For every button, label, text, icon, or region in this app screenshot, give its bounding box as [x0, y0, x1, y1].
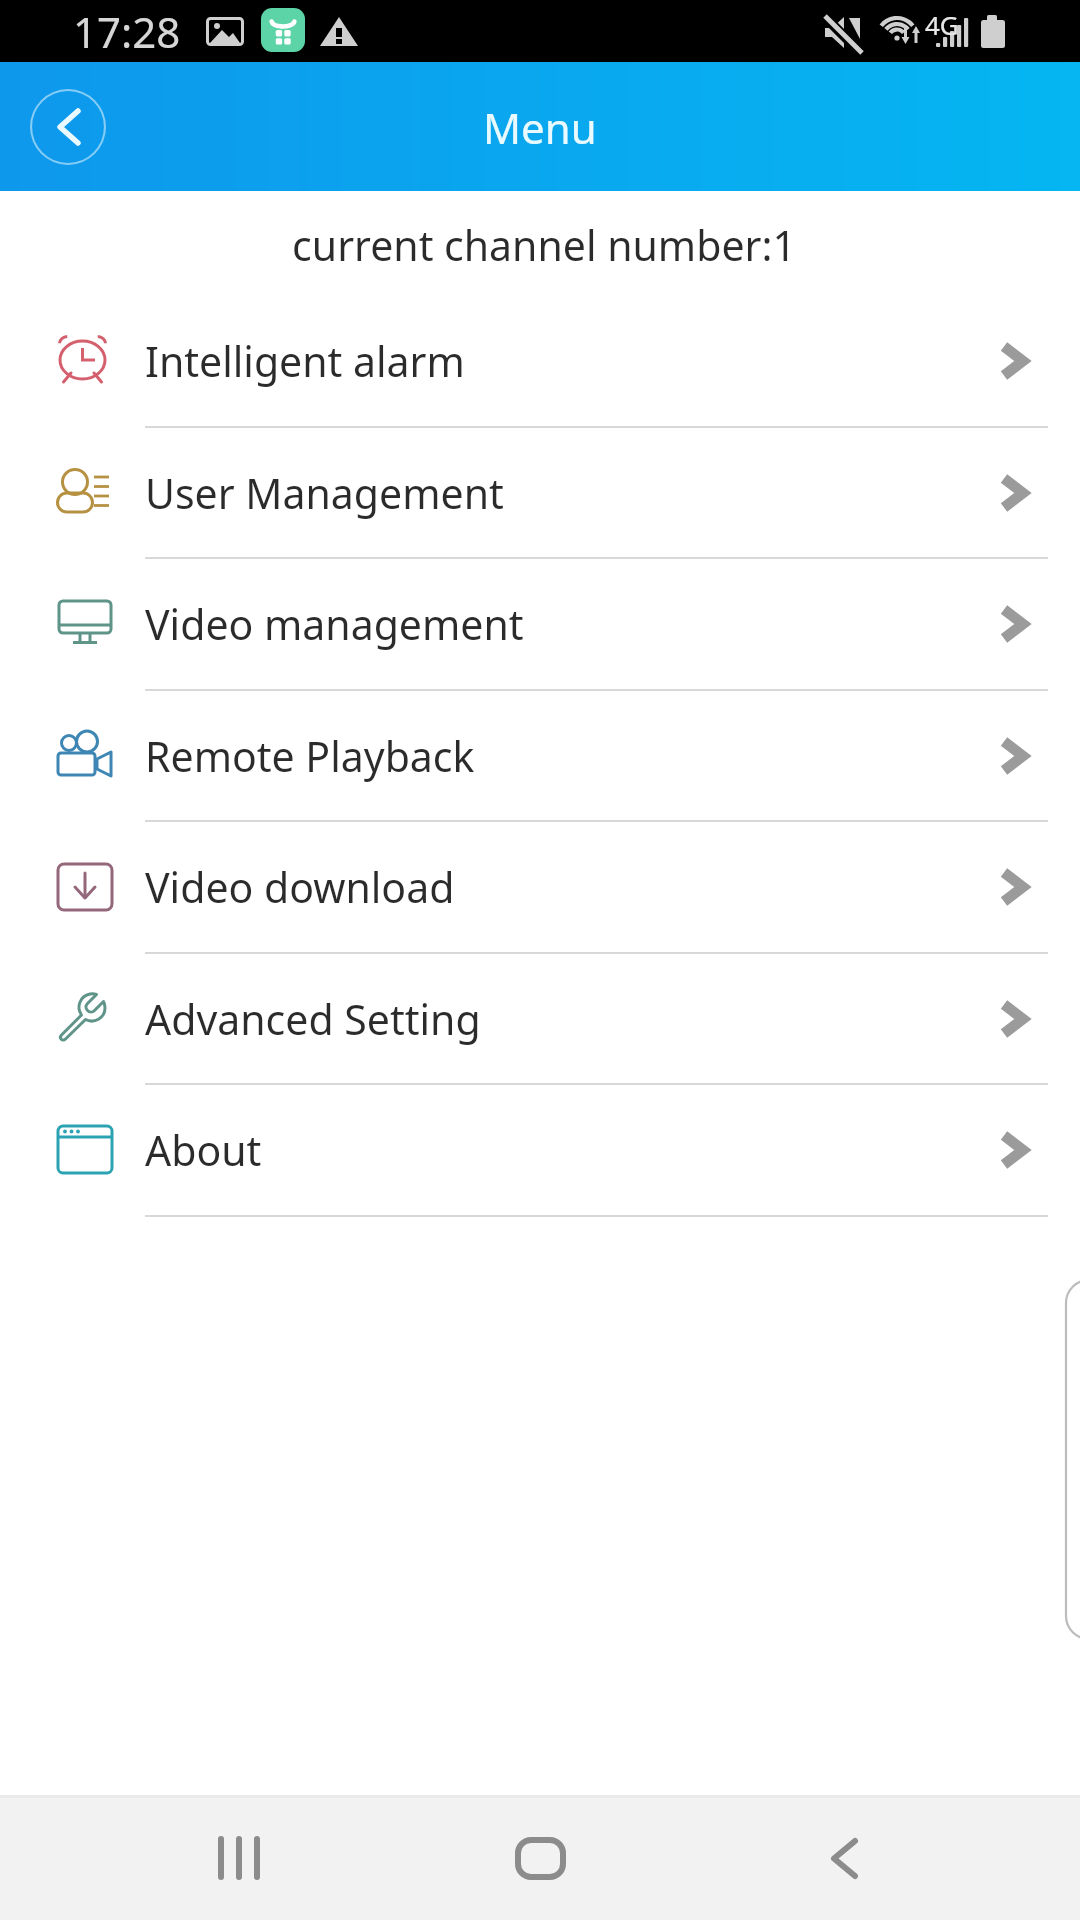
staticText: 17:28 [73, 3, 181, 60]
button[interactable]: About [0, 1085, 1080, 1217]
staticText: Menu [483, 99, 597, 156]
button[interactable]: Advanced Setting [0, 954, 1080, 1085]
staticText: About [145, 1122, 262, 1178]
button[interactable]: Home [490, 1800, 590, 1916]
button[interactable]: Video download [0, 822, 1080, 954]
staticText: Intelligent alarm [145, 333, 465, 389]
staticText: current channel number:1 [4, 217, 1080, 273]
button[interactable]: Intelligent alarm [0, 296, 1080, 428]
staticText: Advanced Setting [145, 991, 481, 1047]
button[interactable]: Back [30, 89, 106, 165]
button[interactable]: Remote Playback [0, 691, 1080, 822]
button[interactable]: Back [794, 1800, 894, 1916]
staticText: Remote Playback [145, 728, 475, 784]
staticText: 4G [925, 7, 959, 42]
button[interactable]: Recent apps [189, 1800, 289, 1916]
button[interactable]: User Management [0, 428, 1080, 559]
staticText: Video management [145, 596, 524, 652]
button[interactable]: Video management [0, 559, 1080, 691]
staticText: Video download [145, 859, 455, 915]
staticText: User Management [145, 465, 504, 521]
